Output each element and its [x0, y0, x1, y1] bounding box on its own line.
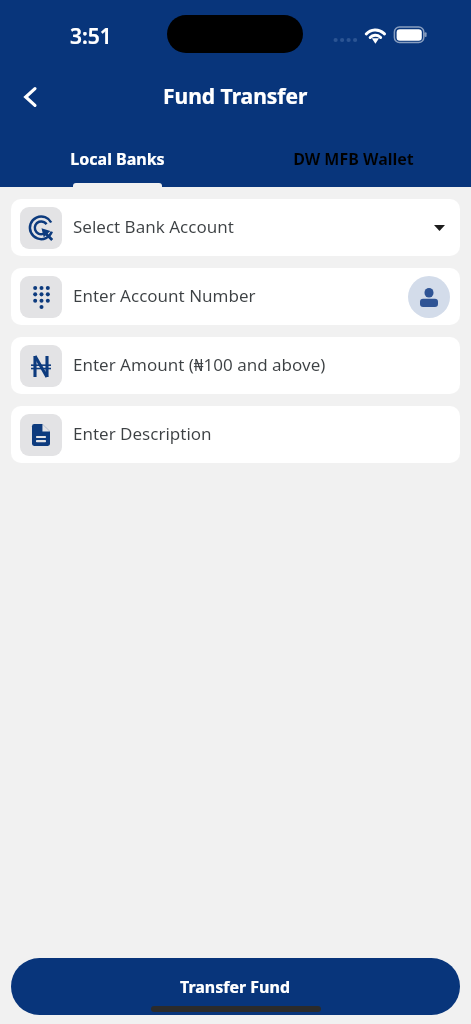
staticText: Select Bank Account — [73, 215, 426, 238]
staticText: Transfer Fund — [180, 976, 291, 998]
button[interactable]: DW MFB Wallet — [235, 136, 471, 187]
button[interactable]: Local Banks — [0, 136, 235, 187]
button[interactable]: Enter Amount (₦100 and above) — [11, 337, 460, 394]
button[interactable]: Transfer Fund — [11, 958, 460, 1015]
staticText: Fund Transfer — [163, 82, 308, 111]
button[interactable]: Enter Account Number — [11, 268, 460, 325]
button[interactable]: Choose contact — [408, 276, 450, 318]
button[interactable]: Show bank list — [426, 215, 452, 241]
staticText: Enter Account Number — [73, 284, 408, 307]
staticText: Local Banks — [70, 148, 165, 170]
button[interactable]: Enter Description — [11, 406, 460, 463]
staticText: 3:51 — [70, 22, 112, 51]
staticText: Enter Amount (₦100 and above) — [73, 353, 460, 376]
staticText: DW MFB Wallet — [293, 148, 414, 170]
staticText: Enter Description — [73, 422, 460, 445]
button[interactable]: Select Bank Account — [11, 199, 460, 256]
button[interactable]: Back — [14, 80, 48, 114]
